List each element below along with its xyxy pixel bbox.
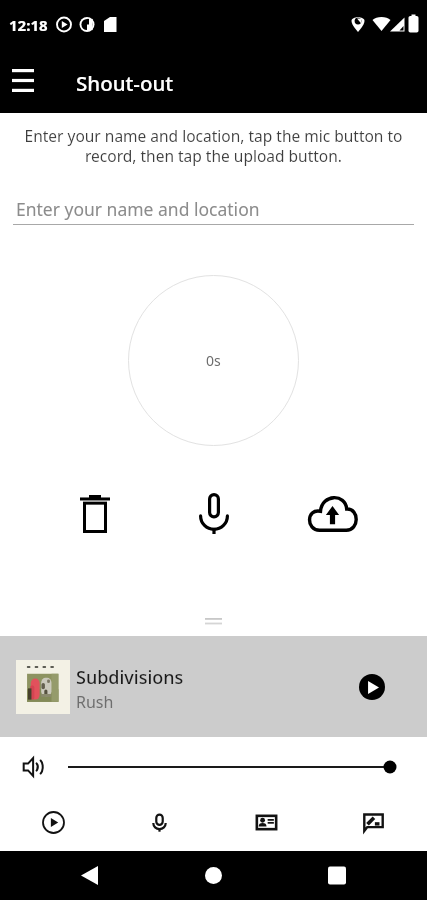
button[interactable]: Enter your name and location xyxy=(13,197,414,225)
button[interactable]: Contacts xyxy=(213,796,320,851)
staticText: Rush xyxy=(76,691,114,713)
button[interactable]: Play xyxy=(0,796,106,851)
staticText: Shout-out xyxy=(76,69,174,97)
button[interactable]: Volume level xyxy=(68,755,396,779)
button[interactable]: Recent apps xyxy=(322,852,370,900)
staticText: 0s xyxy=(206,351,221,370)
button[interactable]: Back xyxy=(66,852,114,900)
staticText: Enter your name and location xyxy=(16,197,260,221)
button[interactable]: Home xyxy=(190,852,238,900)
staticText: 12:18 xyxy=(9,15,48,35)
button[interactable]: Record with microphone xyxy=(189,490,238,538)
button[interactable]: Delete recording xyxy=(70,490,119,538)
button[interactable]: Reviews xyxy=(320,796,427,851)
button[interactable]: Upload recording xyxy=(308,490,357,538)
button[interactable]: Expand media player xyxy=(0,615,427,636)
staticText: Subdivisions xyxy=(76,665,184,690)
staticText: Enter your name and location, tap the mi… xyxy=(22,125,405,167)
button[interactable]: Microphone xyxy=(106,796,213,851)
button[interactable]: Play xyxy=(352,667,392,707)
button[interactable]: Open navigation menu xyxy=(3,60,43,100)
button[interactable]: Volume xyxy=(19,752,49,782)
